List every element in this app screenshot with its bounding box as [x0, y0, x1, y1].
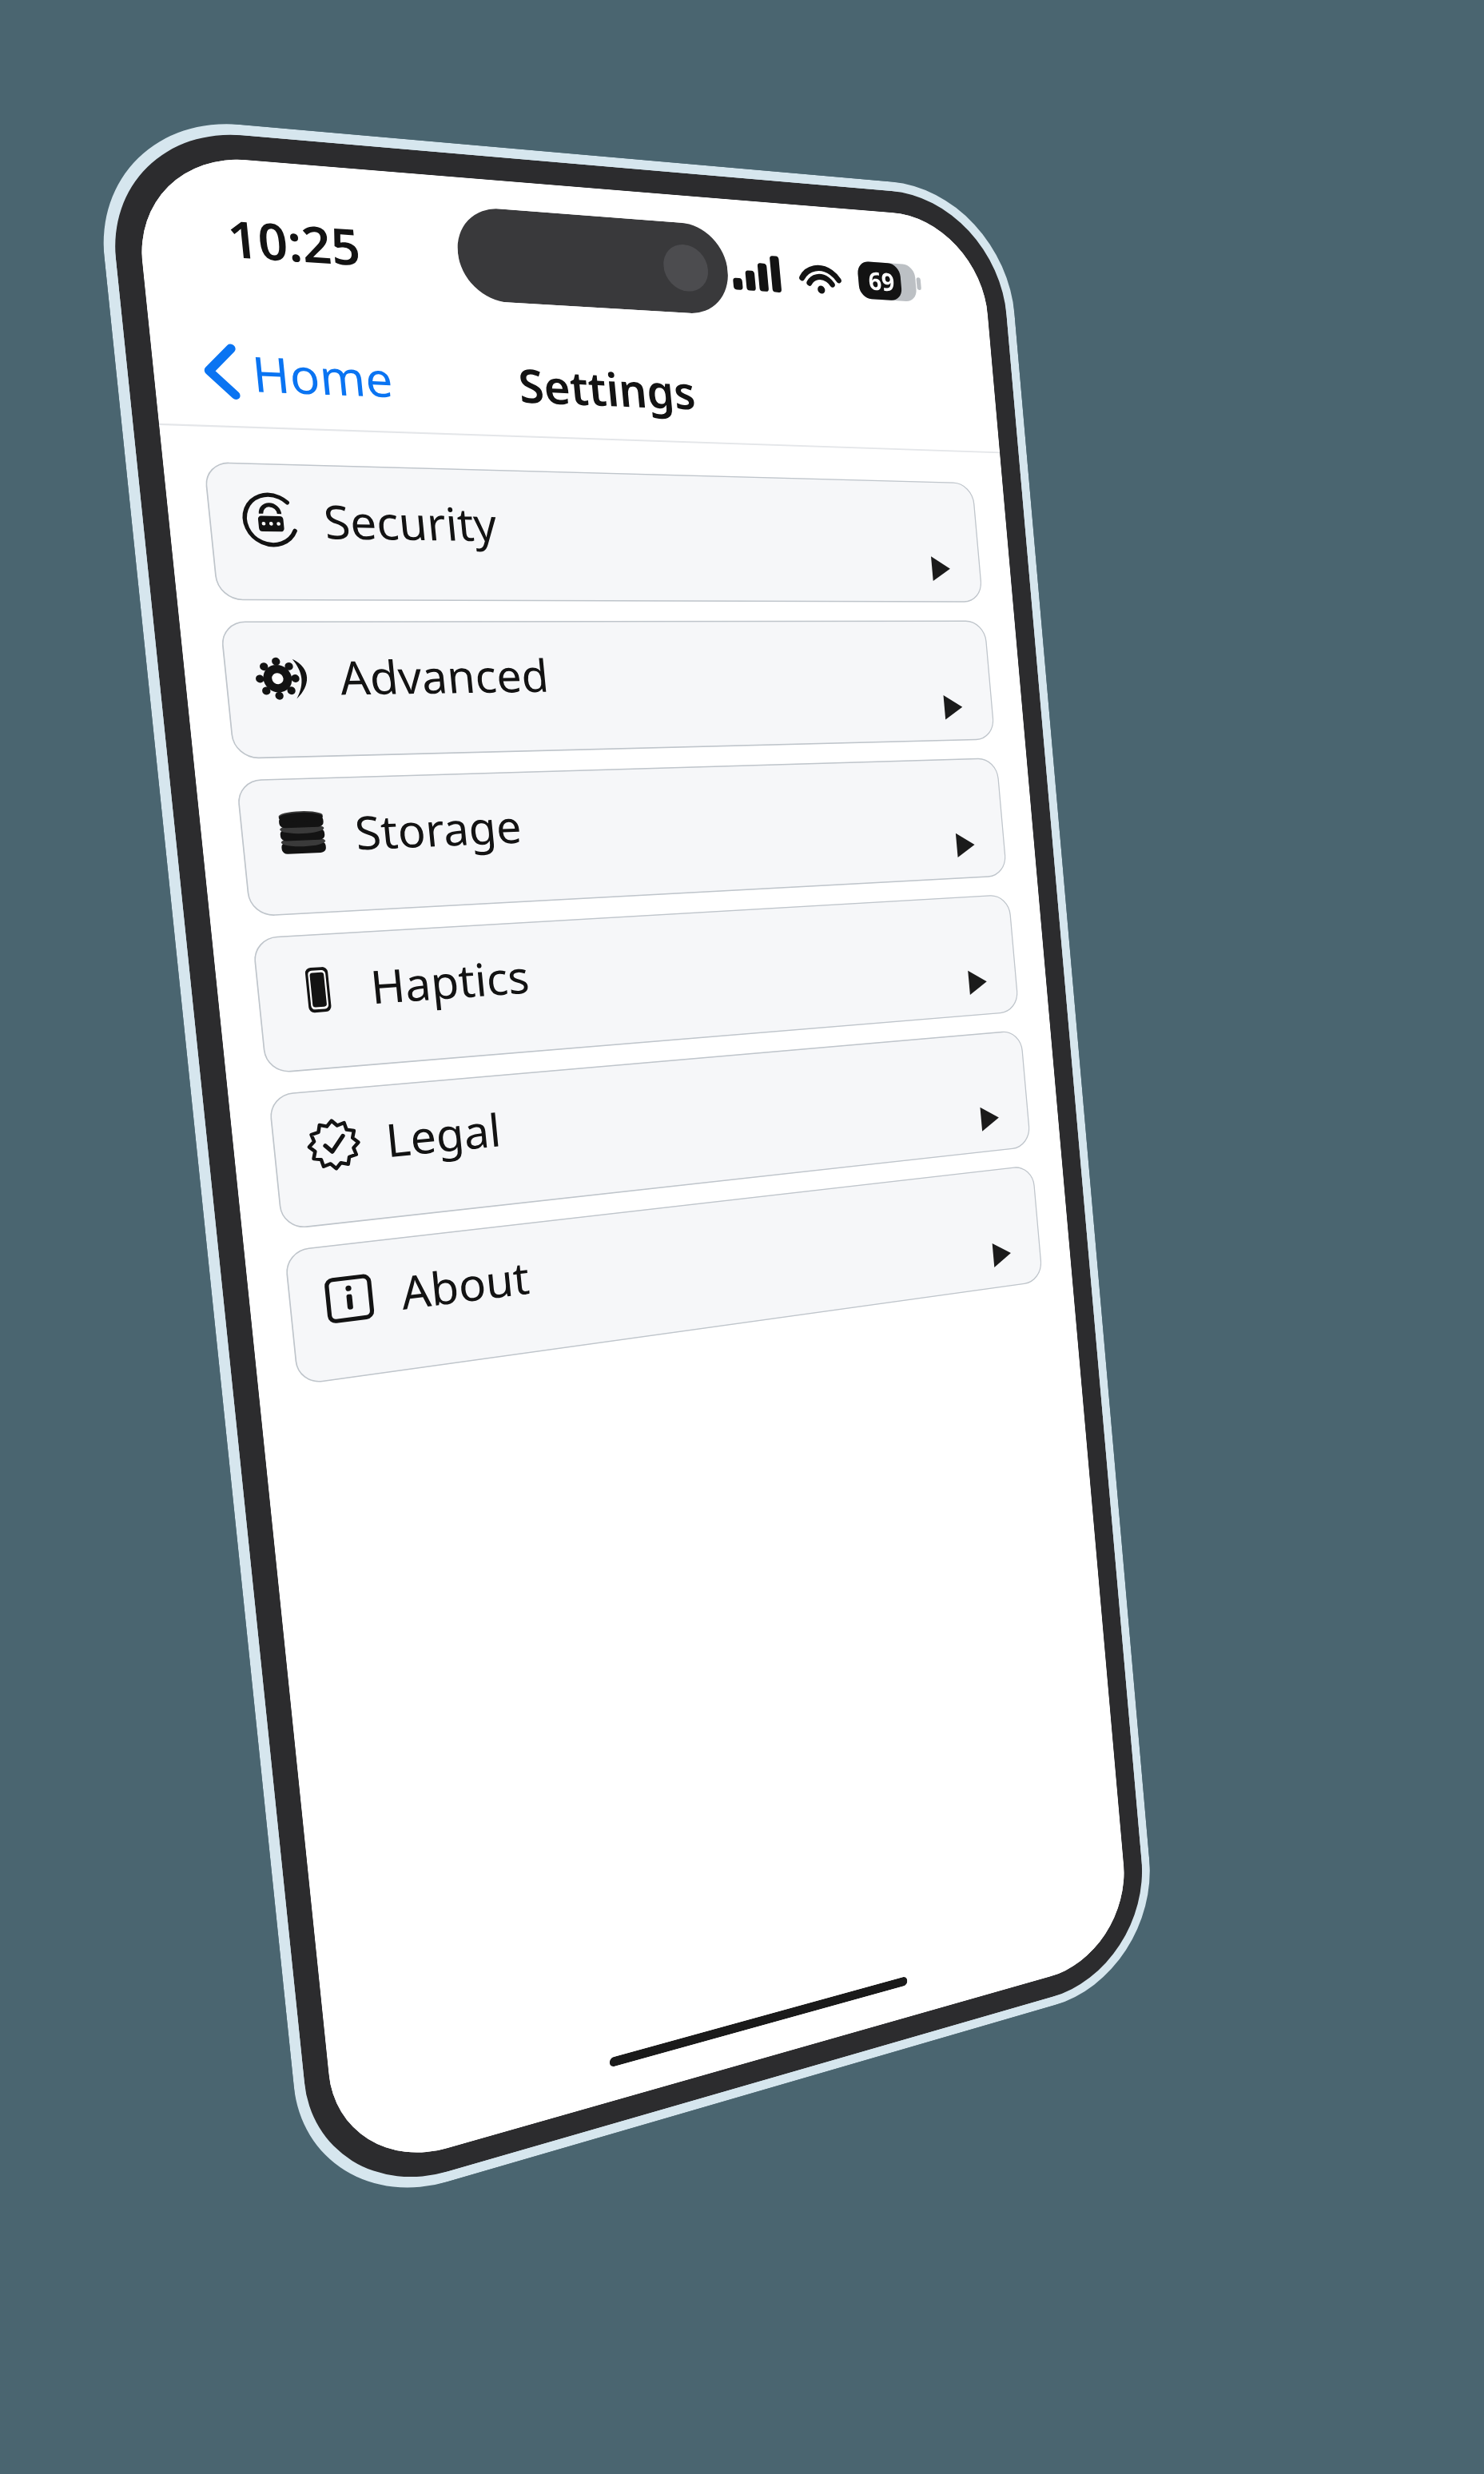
other: Open About	[992, 1241, 1012, 1267]
other: Open Advanced	[943, 695, 963, 720]
button[interactable]: Advanced	[220, 620, 995, 759]
button[interactable]: Home	[192, 328, 405, 420]
other: Open Security	[931, 556, 951, 581]
button[interactable]: Haptics	[252, 894, 1019, 1074]
button[interactable]: Security	[203, 462, 983, 602]
button[interactable]: Storage	[236, 758, 1007, 917]
button[interactable]: Legal	[268, 1030, 1031, 1230]
staticText: Legal	[383, 1098, 504, 1171]
staticText: Haptics	[367, 945, 532, 1017]
other: Open Storage	[956, 832, 976, 858]
button[interactable]: About	[284, 1165, 1043, 1385]
staticText: About	[398, 1246, 532, 1323]
staticText: Home	[249, 339, 396, 411]
staticText: Settings	[515, 353, 698, 422]
staticText: Advanced	[336, 644, 551, 708]
other: Open Haptics	[968, 969, 988, 995]
staticText: 10:25	[224, 203, 363, 280]
staticText: 69	[867, 263, 896, 299]
staticText: Storage	[352, 795, 524, 863]
other: Open Legal	[980, 1106, 1000, 1131]
staticText: Security	[321, 489, 500, 555]
